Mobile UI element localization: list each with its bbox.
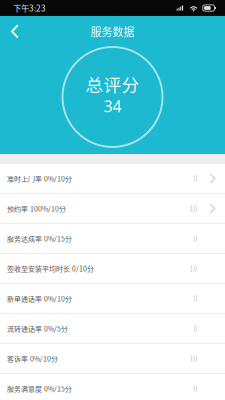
staticText: 0: [193, 383, 197, 393]
staticText: 34: [103, 95, 121, 117]
staticText: 准时上门率 0%/10分: [7, 173, 72, 183]
button[interactable]: 服务达成率 0%/15分: [0, 224, 225, 254]
button[interactable]: Back: [0, 16, 30, 47]
staticText: 服务满意度 0%/15分: [7, 383, 72, 393]
staticText: 10: [189, 263, 197, 273]
button[interactable]: 服务满意度 0%/15分: [0, 374, 225, 400]
button[interactable]: 预约率 100%/10分: [0, 194, 225, 224]
staticText: 0: [193, 323, 197, 333]
staticText: 0: [193, 173, 197, 183]
staticText: 总评分: [85, 71, 139, 97]
staticText: 10: [189, 203, 197, 213]
button[interactable]: 流转通话率 0%/5分: [0, 314, 225, 344]
staticText: 新单通话率 0%/10分: [7, 293, 72, 303]
button[interactable]: 新单通话率 0%/10分: [0, 284, 225, 314]
staticText: 流转通话率 0%/5分: [7, 323, 68, 333]
staticText: 预约率 100%/10分: [7, 203, 66, 213]
button[interactable]: 准时上门率 0%/10分: [0, 164, 225, 194]
staticText: 下午3:23: [13, 2, 46, 14]
button[interactable]: 客诉率 0%/10分: [0, 344, 225, 374]
staticText: 0: [193, 233, 197, 243]
button[interactable]: 签收至安装平均时长 0/10分: [0, 254, 225, 284]
staticText: 0: [193, 293, 197, 303]
staticText: 签收至安装平均时长 0/10分: [7, 263, 94, 273]
staticText: 客诉率 0%/10分: [7, 353, 58, 363]
staticText: 10: [189, 353, 197, 363]
staticText: 服务数据: [90, 24, 134, 39]
staticText: 服务达成率 0%/15分: [7, 233, 72, 243]
